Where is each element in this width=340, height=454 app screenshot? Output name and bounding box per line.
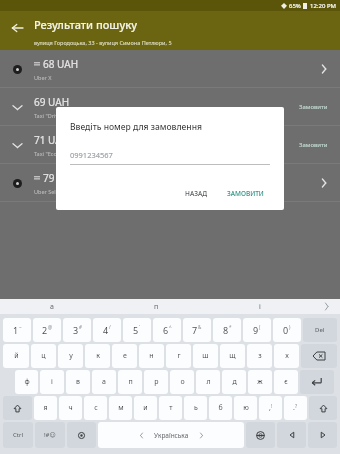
button[interactable]: Cursor left bbox=[277, 422, 306, 448]
button[interactable]: НАЗАД bbox=[179, 185, 213, 202]
button[interactable]: к bbox=[85, 344, 110, 368]
button[interactable]: л bbox=[196, 370, 220, 394]
staticText: н bbox=[149, 351, 154, 361]
button[interactable]: н bbox=[139, 344, 164, 368]
button[interactable]: 79 UAH bbox=[0, 164, 340, 202]
button[interactable]: б bbox=[209, 396, 232, 420]
staticText: Замовити bbox=[299, 141, 328, 149]
button[interactable]: Back bbox=[6, 17, 28, 39]
staticText: Ctrl bbox=[13, 431, 23, 439]
button[interactable]: 3 bbox=[63, 318, 91, 342]
staticText: 5 bbox=[133, 324, 139, 336]
staticText: я bbox=[43, 403, 48, 413]
button[interactable]: є bbox=[274, 370, 298, 394]
button[interactable]: м bbox=[109, 396, 132, 420]
button[interactable]: п bbox=[118, 370, 142, 394]
button[interactable]: п bbox=[104, 299, 208, 314]
staticText: і bbox=[259, 302, 261, 312]
button[interactable]: Ctrl bbox=[3, 422, 33, 448]
button[interactable]: а bbox=[0, 299, 104, 314]
button[interactable]: Del bbox=[303, 318, 337, 342]
button[interactable]: Backspace bbox=[301, 344, 337, 368]
button[interactable]: Change language bbox=[246, 422, 275, 448]
button[interactable]: Shift bbox=[3, 396, 32, 420]
staticText: Українська bbox=[154, 431, 189, 440]
button[interactable]: з bbox=[247, 344, 272, 368]
staticText: Введіть номер для замовлення bbox=[70, 121, 202, 133]
button[interactable]: Details bbox=[316, 175, 332, 191]
button[interactable]: 8 bbox=[213, 318, 241, 342]
button[interactable]: і bbox=[40, 370, 64, 394]
button[interactable]: в bbox=[66, 370, 90, 394]
button[interactable]: ж bbox=[248, 370, 272, 394]
button[interactable]: х bbox=[274, 344, 299, 368]
button[interactable]: Замовити bbox=[295, 100, 332, 114]
staticText: * bbox=[229, 324, 232, 330]
button[interactable]: д bbox=[222, 370, 246, 394]
button[interactable]: 4 bbox=[93, 318, 121, 342]
button[interactable]: Settings bbox=[67, 422, 96, 448]
staticText: ь bbox=[194, 403, 198, 413]
button[interactable]: ч bbox=[59, 396, 82, 420]
button[interactable]: Details bbox=[316, 61, 332, 77]
button[interactable]: р bbox=[144, 370, 168, 394]
button[interactable]: ш bbox=[193, 344, 218, 368]
button[interactable]: Замовити bbox=[295, 138, 332, 152]
button[interactable]: я bbox=[34, 396, 57, 420]
button[interactable]: щ bbox=[220, 344, 245, 368]
staticText: п bbox=[128, 377, 133, 387]
button[interactable]: 1 bbox=[3, 318, 31, 342]
button[interactable]: 5 bbox=[123, 318, 151, 342]
button[interactable]: 2 bbox=[33, 318, 61, 342]
button[interactable]: ЗАМОВИТИ bbox=[221, 185, 270, 202]
button[interactable]: ь bbox=[184, 396, 207, 420]
staticText: 69 UAH bbox=[34, 95, 70, 109]
staticText: 65% bbox=[289, 2, 301, 10]
staticText: . bbox=[293, 403, 295, 413]
button[interactable]: 71 UAH bbox=[0, 126, 340, 164]
button[interactable]: 68 UAH bbox=[0, 50, 340, 88]
staticText: п bbox=[154, 302, 159, 312]
button[interactable]: и bbox=[134, 396, 157, 420]
staticText: ^ bbox=[169, 324, 172, 330]
staticText: а bbox=[50, 302, 54, 312]
staticText: ? bbox=[295, 403, 298, 410]
button[interactable]: Українська bbox=[98, 422, 244, 448]
button[interactable]: й bbox=[3, 344, 29, 368]
button[interactable]: ф bbox=[15, 370, 38, 394]
staticText: ж bbox=[257, 377, 263, 387]
button[interactable]: а bbox=[92, 370, 116, 394]
staticText: з bbox=[258, 351, 262, 361]
button[interactable]: Cursor right bbox=[308, 422, 337, 448]
button[interactable]: і bbox=[208, 299, 312, 314]
button[interactable]: ю bbox=[234, 396, 257, 420]
button[interactable]: т bbox=[159, 396, 182, 420]
staticText: 79 UAH bbox=[43, 171, 79, 185]
staticText: е bbox=[123, 351, 127, 361]
staticText: и bbox=[143, 403, 148, 413]
button[interactable]: г bbox=[166, 344, 191, 368]
button[interactable]: ц bbox=[31, 344, 56, 368]
button[interactable]: о bbox=[170, 370, 194, 394]
staticText: 3 bbox=[73, 324, 79, 336]
button[interactable]: !#☺ bbox=[35, 422, 65, 448]
button[interactable]: Shift bbox=[309, 396, 337, 420]
staticText: о bbox=[180, 377, 185, 387]
button[interactable]: , bbox=[259, 396, 282, 420]
button[interactable]: 7 bbox=[183, 318, 211, 342]
button[interactable]: 0991234567 bbox=[70, 150, 270, 165]
staticText: 2 bbox=[42, 324, 48, 336]
staticText: ш bbox=[202, 351, 209, 361]
button[interactable]: . bbox=[284, 396, 307, 420]
staticText: НАЗАД bbox=[185, 189, 207, 198]
button[interactable]: 9 bbox=[243, 318, 271, 342]
button[interactable]: Enter bbox=[300, 370, 334, 394]
button[interactable]: у bbox=[58, 344, 83, 368]
button[interactable]: 69 UAH bbox=[0, 88, 340, 126]
staticText: л bbox=[206, 377, 211, 387]
button[interactable]: 0 bbox=[273, 318, 301, 342]
button[interactable]: с bbox=[84, 396, 107, 420]
button[interactable]: 6 bbox=[153, 318, 181, 342]
button[interactable]: е bbox=[112, 344, 137, 368]
button[interactable]: More suggestions bbox=[312, 299, 340, 314]
